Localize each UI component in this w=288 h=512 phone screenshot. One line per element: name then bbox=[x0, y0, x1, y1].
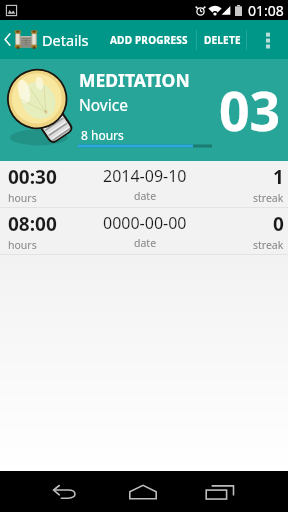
staticText: streak bbox=[253, 191, 284, 205]
staticText: DELETE bbox=[204, 33, 241, 47]
staticText: 01:08 bbox=[248, 1, 284, 20]
button[interactable]: ADD PROGRESS bbox=[95, 20, 196, 59]
staticText: date bbox=[134, 236, 157, 250]
staticText: Novice bbox=[79, 94, 128, 115]
staticText: 08:00 bbox=[8, 211, 57, 237]
staticText: 2014-09-10 bbox=[103, 165, 187, 187]
staticText: 0000-00-00 bbox=[103, 212, 187, 234]
button[interactable]: DELETE bbox=[197, 20, 246, 59]
button[interactable]: Details bbox=[0, 20, 95, 59]
staticText: 00:30 bbox=[8, 164, 57, 190]
staticText: hours bbox=[8, 238, 37, 252]
button[interactable]: Back bbox=[26, 471, 104, 512]
staticText: streak bbox=[253, 238, 284, 252]
staticText: Details bbox=[42, 30, 89, 50]
button[interactable]: 00:30 bbox=[0, 161, 288, 207]
button[interactable]: Home bbox=[104, 471, 181, 512]
staticText: 0 bbox=[273, 211, 284, 237]
staticText: date bbox=[134, 189, 157, 203]
staticText: ADD PROGRESS bbox=[110, 33, 188, 47]
staticText: 1 bbox=[273, 164, 284, 190]
button[interactable]: Recent apps bbox=[181, 471, 258, 512]
staticText: 03 bbox=[219, 74, 281, 147]
button[interactable]: 08:00 bbox=[0, 208, 288, 254]
staticText: hours bbox=[8, 191, 37, 205]
button[interactable]: More options bbox=[247, 20, 288, 59]
staticText: 8 hours bbox=[81, 127, 124, 143]
staticText: MEDITATION bbox=[79, 68, 190, 92]
